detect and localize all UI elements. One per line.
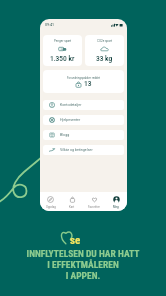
staticText: Meg: [113, 205, 119, 208]
staticText: Forundringspakker reddet: [67, 76, 100, 79]
button[interactable]: CO2e spart: [85, 35, 124, 66]
button[interactable]: Vilkår og betingelser: [43, 145, 124, 155]
staticText: 13: [84, 80, 92, 88]
staticText: Vilkår og betingelser: [60, 148, 93, 152]
button[interactable]: Blogg: [43, 130, 124, 140]
staticText: INNFLYTELSEN DU HAR HATT I EFFEKTMÅLEREN…: [0, 248, 166, 281]
staticText: Blogg: [60, 133, 70, 137]
button[interactable]: Kontodetaljer: [43, 100, 124, 110]
button[interactable]: Favoritter: [83, 194, 105, 210]
other: Too Good To Go logo: [59, 229, 78, 247]
button[interactable]: Forundringspakker reddet: [43, 70, 124, 93]
staticText: 33 kg: [96, 55, 113, 63]
button[interactable]: Kart: [61, 194, 83, 210]
staticText: 09:41: [45, 23, 55, 27]
button[interactable]: Hjelpesenter: [43, 115, 124, 125]
staticText: Favoritter: [88, 205, 100, 208]
staticText: Oppdag: [46, 205, 56, 208]
button[interactable]: Oppdag: [40, 194, 61, 210]
staticText: Penger spart: [54, 39, 72, 43]
staticText: Kontodetaljer: [60, 103, 82, 107]
button[interactable]: Meg: [105, 194, 127, 210]
staticText: se: [70, 234, 81, 247]
button[interactable]: Penger spart: [43, 35, 82, 66]
staticText: CO2e spart: [97, 39, 112, 43]
staticText: 1.350 kr: [50, 55, 75, 63]
staticText: Hjelpesenter: [60, 118, 81, 122]
staticText: Kart: [69, 205, 75, 208]
